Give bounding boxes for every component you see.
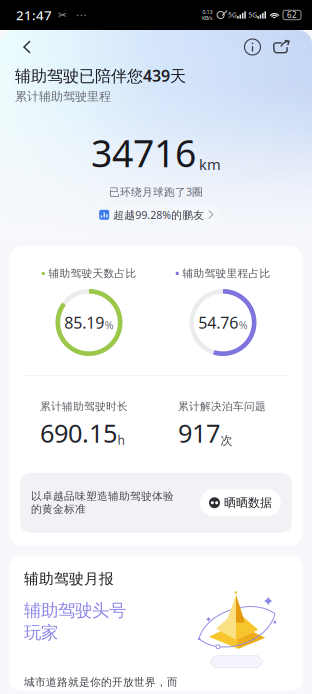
staticText: 34716 — [91, 128, 196, 178]
staticText: 5G — [226, 11, 237, 19]
staticText: 917 — [178, 416, 220, 450]
staticText: 辅助驾驶里程占比 — [182, 267, 270, 280]
staticText: 累计解决泊车问题 — [178, 400, 266, 413]
staticText: 次 — [220, 433, 232, 448]
staticText: 晒晒数据 — [224, 495, 272, 510]
staticText: 以卓越品味塑造辅助驾驶体验 的黄金标准 — [31, 490, 174, 516]
staticText: 超越99.28%的鹏友 — [113, 208, 204, 222]
button[interactable]: 超越99.28%的鹏友 — [92, 205, 220, 225]
staticText: 城市道路就是你的开放世界，而 — [24, 676, 178, 689]
staticText: 690.15 — [40, 416, 117, 450]
staticText: h — [117, 432, 124, 448]
staticText: KB/s — [202, 14, 213, 22]
staticText: 累计辅助驾驶里程 — [15, 89, 111, 104]
staticText: 85.19 — [64, 312, 104, 333]
button[interactable]: 辅助驾驶月报 — [9, 556, 303, 691]
staticText: 5G — [248, 11, 257, 19]
staticText: 玩家 — [24, 622, 58, 643]
staticText: 已环绕月球跑了3圈 — [109, 185, 203, 199]
staticText: 累计辅助驾驶时长 — [40, 400, 128, 413]
button[interactable]: Back — [10, 34, 44, 60]
staticText: km — [199, 155, 221, 174]
button[interactable]: Information — [238, 34, 267, 60]
staticText: ✂ ⋯ — [52, 9, 87, 21]
staticText: 辅助驾驶头号 — [24, 600, 126, 621]
staticText: 辅助驾驶月报 — [24, 570, 114, 588]
button[interactable]: 晒晒数据 — [200, 489, 281, 516]
staticText: 0.13 — [203, 8, 213, 15]
staticText: % — [239, 318, 248, 332]
staticText: % — [105, 318, 114, 332]
staticText: 54.76 — [198, 312, 238, 333]
staticText: 辅助驾驶已陪伴您439天 — [15, 65, 186, 86]
staticText: 辅助驾驶天数占比 — [48, 267, 136, 280]
button[interactable]: Share — [267, 34, 296, 60]
staticText: 62 — [287, 10, 297, 20]
staticText: 21:47 — [16, 6, 52, 24]
